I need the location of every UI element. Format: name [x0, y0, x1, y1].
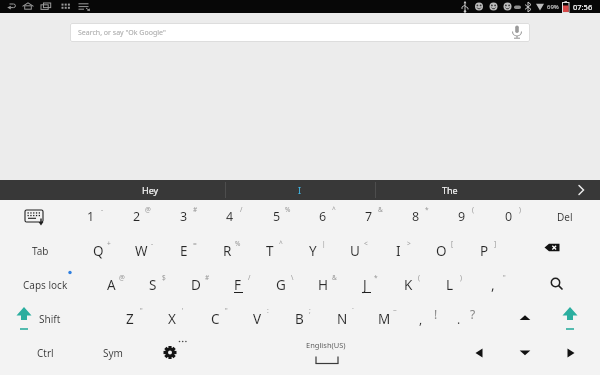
button[interactable]: B — [279, 302, 319, 335]
button[interactable] — [458, 336, 498, 369]
button[interactable]: S — [133, 268, 173, 301]
staticText: W — [135, 242, 148, 260]
button[interactable]: I — [225, 180, 375, 200]
staticText: # — [205, 273, 210, 282]
button[interactable]: 9 — [442, 200, 482, 233]
button[interactable]: 6 — [303, 200, 343, 233]
staticText: S — [149, 276, 157, 294]
staticText: | — [322, 239, 326, 248]
button[interactable]: Z — [110, 302, 150, 335]
button[interactable]: Ctrl — [17, 336, 73, 369]
staticText: I — [298, 184, 302, 196]
staticText: Q — [93, 242, 104, 260]
button[interactable] — [550, 336, 590, 369]
button[interactable]: W — [121, 234, 161, 267]
staticText: # — [193, 205, 198, 214]
staticText: Ctrl — [37, 346, 54, 360]
button[interactable] — [534, 234, 574, 267]
button[interactable]: . — [451, 311, 467, 327]
button[interactable]: Shift — [27, 302, 73, 335]
staticText: K — [404, 276, 413, 294]
staticText: % — [285, 205, 291, 214]
staticText: B — [295, 310, 304, 328]
button[interactable]: 2 — [117, 200, 157, 233]
staticText: , — [419, 311, 423, 327]
staticText: " — [503, 273, 506, 282]
staticText: 07:56 — [573, 2, 593, 12]
button[interactable]: H — [303, 268, 343, 301]
staticText: + — [107, 239, 111, 248]
button[interactable]: C — [195, 302, 235, 335]
staticText: Y — [309, 242, 317, 260]
button[interactable]: E — [164, 234, 204, 267]
button[interactable]: 3 — [164, 200, 204, 233]
button[interactable]: G — [261, 268, 301, 301]
button[interactable]: Search, or say "Ok Google" — [70, 23, 530, 42]
staticText: C — [211, 310, 220, 328]
button[interactable]: 7 — [349, 200, 389, 233]
staticText: D — [191, 276, 201, 294]
button[interactable]: 8 — [396, 200, 436, 233]
staticText: A — [107, 276, 116, 294]
button[interactable]: V — [237, 302, 277, 335]
staticText: % — [235, 239, 241, 248]
staticText: ) — [519, 205, 521, 214]
button[interactable] — [14, 200, 54, 233]
staticText: 0 — [505, 208, 513, 225]
staticText: The — [442, 184, 458, 196]
button[interactable]: U — [335, 234, 375, 267]
button[interactable]: R — [207, 234, 247, 267]
staticText: " — [140, 306, 143, 315]
staticText: ^ — [279, 239, 283, 248]
button[interactable]: The — [375, 180, 525, 200]
staticText: ( — [418, 273, 420, 282]
button[interactable] — [504, 336, 544, 369]
button[interactable]: I — [378, 234, 418, 267]
button[interactable]: 1 — [71, 200, 111, 233]
button[interactable]: Sym — [88, 336, 138, 369]
button[interactable]: Hey — [75, 180, 225, 200]
button[interactable] — [566, 180, 596, 200]
button[interactable]: L — [430, 268, 470, 301]
button[interactable]: , — [413, 311, 429, 327]
button[interactable]: D — [176, 268, 216, 301]
staticText: T — [266, 242, 274, 260]
button[interactable]: X — [152, 302, 192, 335]
button[interactable] — [537, 268, 577, 301]
staticText: " — [225, 306, 228, 315]
button[interactable]: K — [388, 268, 428, 301]
staticText: , — [491, 276, 495, 294]
button[interactable] — [210, 336, 440, 372]
staticText: G — [276, 276, 286, 294]
button[interactable]: A — [91, 268, 131, 301]
button[interactable]: T — [250, 234, 290, 267]
staticText: / — [248, 273, 251, 282]
button[interactable]: Q — [78, 234, 118, 267]
button[interactable] — [550, 301, 590, 334]
staticText: & — [378, 205, 383, 214]
staticText: 6 — [319, 208, 327, 225]
button[interactable]: M — [364, 302, 404, 335]
button[interactable]: N — [322, 302, 362, 335]
staticText: - — [101, 205, 104, 214]
button[interactable]: Caps lock — [11, 268, 79, 301]
staticText: ! — [434, 306, 438, 322]
button[interactable]: Del — [540, 200, 590, 233]
button[interactable]: J — [345, 268, 385, 301]
button[interactable]: 0 — [489, 200, 529, 233]
button[interactable] — [504, 301, 544, 334]
button[interactable] — [150, 336, 190, 369]
button[interactable]: F — [218, 268, 258, 301]
button[interactable]: Y — [293, 234, 333, 267]
button[interactable]: O — [421, 234, 461, 267]
staticText: > — [407, 239, 411, 248]
staticText: $ — [162, 273, 166, 282]
button[interactable]: Tab — [12, 234, 68, 267]
staticText: F — [234, 276, 242, 294]
staticText: [ — [451, 239, 454, 248]
button[interactable]: , — [473, 268, 513, 301]
button[interactable]: 4 — [210, 200, 250, 233]
staticText: 1 — [87, 208, 95, 225]
button[interactable]: P — [464, 234, 504, 267]
button[interactable]: 5 — [257, 200, 297, 233]
